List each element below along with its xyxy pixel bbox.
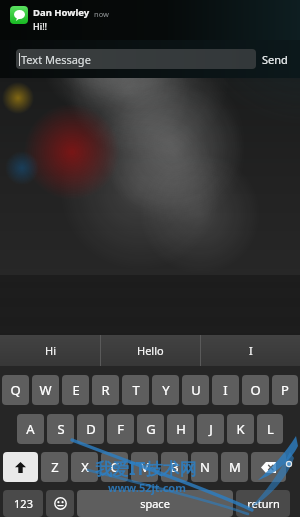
button[interactable]: S (47, 414, 74, 444)
staticText: T (132, 381, 140, 399)
staticText: H (176, 420, 186, 438)
staticText: Text Message (21, 52, 91, 67)
button[interactable]: E (62, 375, 89, 405)
button[interactable]: Backspace (251, 452, 286, 482)
button[interactable]: C (101, 452, 128, 482)
button[interactable]: U (182, 375, 209, 405)
button[interactable]: M (221, 452, 248, 482)
button[interactable]: L (257, 414, 283, 444)
staticText: I (223, 381, 228, 399)
staticText: B (170, 458, 179, 476)
staticText: P (281, 381, 289, 399)
staticText: J (209, 420, 213, 438)
staticText: Hi!! (33, 20, 48, 32)
staticText: 我爱IT技术网 (95, 457, 197, 480)
staticText: space (140, 496, 170, 511)
staticText: D (86, 420, 96, 438)
button[interactable]: Emoji keyboard (46, 490, 74, 517)
staticText: Send (262, 52, 288, 67)
button[interactable]: V (131, 452, 158, 482)
staticText: M (229, 458, 241, 476)
staticText: now (94, 9, 109, 19)
button[interactable]: space (77, 490, 233, 517)
staticText: Hello (137, 343, 164, 358)
staticText: K (236, 420, 245, 438)
button[interactable]: 123 (3, 490, 43, 517)
staticText: U (191, 381, 201, 399)
staticText: Dan Howley (33, 6, 90, 19)
staticText: F (117, 420, 124, 438)
button[interactable]: Shift (3, 452, 38, 482)
button[interactable]: return (236, 490, 290, 517)
staticText: I (249, 343, 253, 358)
button[interactable]: Hello (101, 335, 200, 366)
button[interactable]: X (71, 452, 98, 482)
button[interactable]: Q (2, 375, 29, 405)
staticText: R (101, 381, 110, 399)
staticText: return (247, 496, 280, 511)
button[interactable]: G (137, 414, 164, 444)
staticText: S (57, 420, 65, 438)
staticText: www.52jt.com (108, 480, 186, 495)
staticText: A (26, 420, 35, 438)
staticText: W (39, 381, 52, 399)
staticText: O (250, 381, 261, 399)
button[interactable]: B (161, 452, 188, 482)
button[interactable]: W (32, 375, 59, 405)
button[interactable]: Text Message (16, 49, 256, 69)
button[interactable]: F (107, 414, 134, 444)
button[interactable]: Dan Howley (0, 0, 300, 40)
staticText: G (146, 420, 156, 438)
staticText: Z (51, 458, 59, 476)
button[interactable]: A (17, 414, 44, 444)
staticText: Q (10, 381, 21, 399)
button[interactable]: N (191, 452, 218, 482)
button[interactable]: Z (41, 452, 68, 482)
staticText: V (141, 458, 149, 476)
staticText: L (267, 420, 274, 438)
button[interactable]: Y (152, 375, 179, 405)
button[interactable]: H (167, 414, 194, 444)
button[interactable]: I (201, 335, 300, 366)
button[interactable]: K (227, 414, 254, 444)
button[interactable]: Send (256, 40, 294, 78)
staticText: N (200, 458, 210, 476)
staticText: Hi (45, 343, 56, 358)
button[interactable]: J (197, 414, 224, 444)
button[interactable]: R (92, 375, 119, 405)
staticText: C (110, 458, 119, 476)
staticText: Y (162, 381, 170, 399)
button[interactable]: T (122, 375, 149, 405)
button[interactable]: P (272, 375, 298, 405)
staticText: X (81, 458, 89, 476)
staticText: 123 (14, 496, 33, 511)
button[interactable]: I (212, 375, 239, 405)
staticText: E (72, 381, 80, 399)
button[interactable]: O (242, 375, 269, 405)
button[interactable]: Hi (0, 335, 100, 366)
button[interactable]: D (77, 414, 104, 444)
